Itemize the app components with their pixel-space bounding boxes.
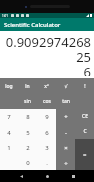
button[interactable]: 1 <box>0 140 18 155</box>
button[interactable]: tan <box>56 94 75 109</box>
button[interactable]: x² <box>37 78 56 94</box>
button[interactable]: 3 <box>37 140 56 155</box>
button[interactable]: + <box>56 109 75 125</box>
button[interactable]: 7 <box>0 109 18 125</box>
staticText: cos <box>43 98 51 105</box>
staticText: 1:01 <box>2 14 8 18</box>
button[interactable]: CE <box>75 109 94 124</box>
staticText: ! <box>84 83 86 90</box>
button[interactable]: ln <box>18 78 37 94</box>
staticText: Scientific Calculator <box>4 21 61 29</box>
staticText: 0 <box>26 159 30 167</box>
staticText: 5 <box>26 129 30 137</box>
button[interactable]: 6 <box>37 125 56 140</box>
staticText: - <box>65 129 67 137</box>
staticText: . <box>46 159 48 167</box>
button[interactable]: 4 <box>0 125 18 140</box>
staticText: 1 <box>7 144 11 152</box>
staticText: 0.909297426825 6 <box>3 33 91 76</box>
button[interactable]: ! <box>75 78 94 94</box>
staticText: ln <box>25 83 30 90</box>
button[interactable]: ÷ <box>56 155 75 170</box>
button[interactable]: - <box>56 125 75 140</box>
staticText: 8 <box>26 113 30 121</box>
button[interactable]: √ <box>56 78 75 94</box>
button[interactable]: C <box>75 124 94 139</box>
button[interactable]: cos <box>37 94 56 109</box>
staticText: 4 <box>7 129 11 137</box>
button[interactable]: = <box>75 139 94 170</box>
staticText: 2 <box>26 144 30 152</box>
button[interactable]: Back <box>16 171 26 181</box>
staticText: 9 <box>45 113 49 121</box>
button[interactable]: 8 <box>18 109 37 125</box>
staticText: 7 <box>7 113 11 121</box>
staticText: × <box>64 144 68 152</box>
button[interactable]: × <box>56 140 75 155</box>
staticText: tan <box>62 98 70 105</box>
staticText: sin <box>24 98 31 105</box>
staticText: C <box>83 128 87 135</box>
staticText: + <box>64 113 68 121</box>
staticText: log <box>5 83 13 90</box>
button[interactable]: log <box>0 78 18 94</box>
button[interactable]: Home <box>42 171 52 181</box>
staticText: = <box>83 151 87 159</box>
staticText: x² <box>44 83 49 90</box>
staticText: 6 <box>45 129 49 137</box>
staticText: 3 <box>45 144 49 152</box>
staticText: ÷ <box>64 159 68 167</box>
staticText: √ <box>64 83 68 89</box>
button[interactable]: sin <box>18 94 37 109</box>
button[interactable]: Recent apps <box>68 171 78 181</box>
button[interactable]: 5 <box>18 125 37 140</box>
button[interactable]: 2 <box>18 140 37 155</box>
staticText: CE <box>82 113 88 120</box>
button[interactable]: 0 <box>18 155 37 170</box>
button[interactable]: 9 <box>37 109 56 125</box>
